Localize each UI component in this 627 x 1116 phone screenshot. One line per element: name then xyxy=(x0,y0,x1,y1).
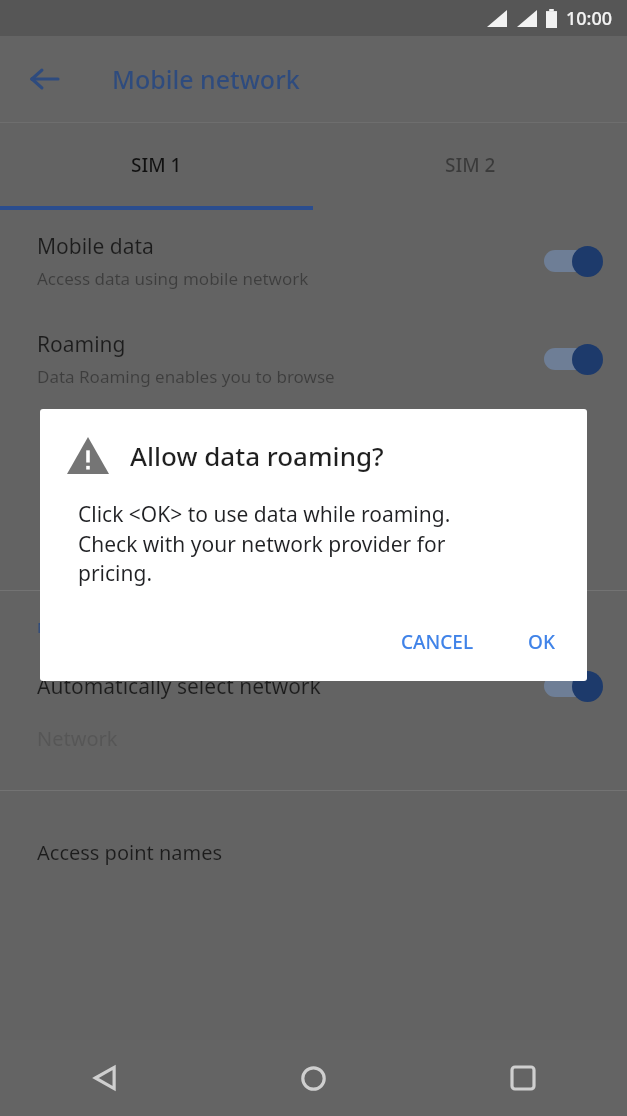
staticText: 10:00 xyxy=(566,6,613,31)
button[interactable]: Automatically select network xyxy=(0,663,627,709)
staticText: Mobile network xyxy=(112,62,300,96)
staticText: Data Roaming enables you to browse xyxy=(37,365,335,388)
button[interactable]: Toggle xyxy=(541,342,603,376)
staticText: SIM 1 xyxy=(131,152,182,178)
staticText: Mobile data xyxy=(37,232,154,261)
button[interactable]: Roaming xyxy=(0,324,627,394)
button[interactable]: SIM 2 xyxy=(313,123,627,206)
button[interactable]: SIM 1 xyxy=(0,123,313,206)
button[interactable]: Back xyxy=(17,51,73,107)
staticText: Network xyxy=(37,725,118,752)
staticText: SIM 2 xyxy=(445,152,496,178)
staticText: Click <OK> to use data while roaming. Ch… xyxy=(78,500,451,587)
button[interactable]: CANCEL xyxy=(385,617,490,667)
button[interactable]: Home xyxy=(209,1040,418,1116)
button[interactable]: OK xyxy=(512,617,571,667)
staticText: Allow data roaming? xyxy=(130,438,384,473)
staticText: Automatically select network xyxy=(37,672,321,701)
staticText: Access point names xyxy=(37,839,223,866)
button[interactable]: Toggle xyxy=(541,244,603,278)
staticText: CANCEL xyxy=(401,629,474,655)
staticText: Roaming xyxy=(37,330,126,359)
staticText: OK xyxy=(528,629,555,655)
button[interactable]: Back xyxy=(0,1040,209,1116)
staticText: Network xyxy=(37,617,99,637)
button[interactable]: Mobile data xyxy=(0,226,627,296)
button[interactable]: Recent apps xyxy=(418,1040,627,1116)
button[interactable]: Toggle xyxy=(541,669,603,703)
staticText: Access data using mobile network xyxy=(37,267,309,290)
